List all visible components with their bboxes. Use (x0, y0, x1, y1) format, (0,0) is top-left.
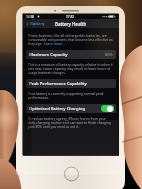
staticText: Battery (30, 21, 45, 27)
staticText: consumable components that become less e… (28, 37, 113, 41)
button[interactable]: Peak Performance Capability (26, 79, 116, 88)
staticText: 14:36 (26, 15, 35, 19)
button[interactable]: Optimised Battery Charging toggle, on (101, 105, 114, 112)
button[interactable]: Optimised Battery Charging (26, 104, 116, 113)
button[interactable]: Maximum Capacity (26, 50, 116, 59)
staticText: Battery Health (55, 21, 87, 27)
staticText: past 80% until you need to use it. (28, 124, 80, 128)
staticText: usage between charges. (28, 70, 66, 74)
staticText: Peak Performance Capability (29, 81, 87, 87)
staticText: Optimised Battery Charging (29, 106, 86, 112)
staticText: was new. Lower capacity may result in fe… (28, 66, 111, 70)
staticText: they age. (28, 41, 44, 45)
staticText: daily charging routine so it can wait to… (28, 120, 111, 124)
button[interactable]: Learn more... (44, 41, 65, 45)
staticText: 80% (105, 52, 113, 57)
staticText: Phone batteries, like all rechargeable b… (28, 33, 107, 37)
staticText: Your battery is currently supporting nor… (28, 91, 104, 95)
button[interactable]: Battery (25, 20, 46, 28)
staticText: 17:32 (66, 15, 75, 19)
staticText: performance. (28, 95, 50, 99)
staticText: To reduce battery ageing, iPhone learns … (28, 116, 106, 120)
staticText: Maximum Capacity (29, 52, 68, 58)
staticText: This is a measure of battery capacity re… (28, 62, 113, 66)
